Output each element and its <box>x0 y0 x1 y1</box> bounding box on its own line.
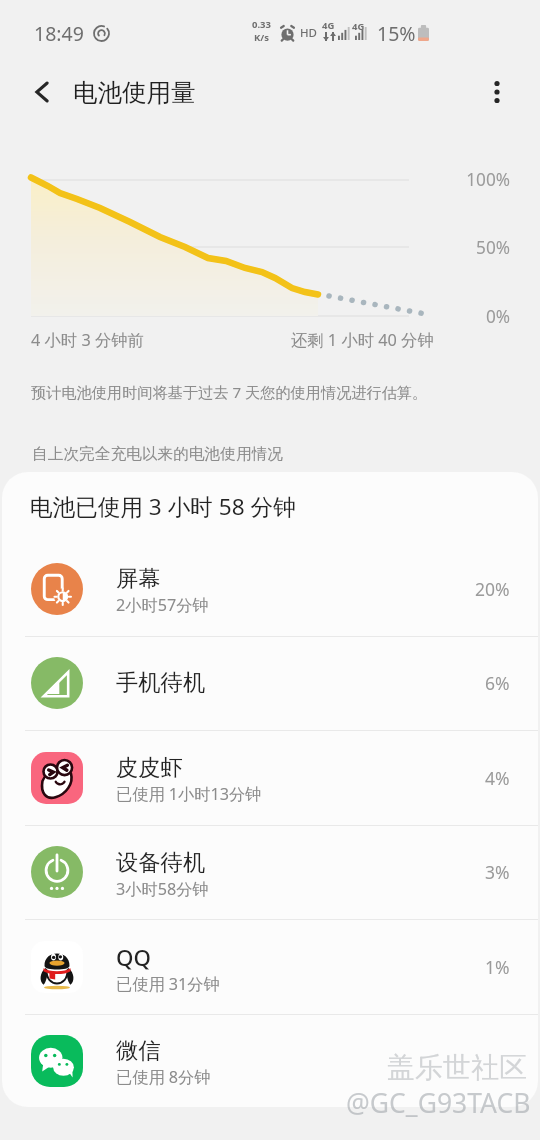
staticText: 屏幕 <box>116 565 161 593</box>
staticText: 已使用 1小时13分钟 <box>116 783 262 805</box>
staticText: 18:49 <box>34 20 84 47</box>
button[interactable]: QQ <box>2 919 538 1014</box>
staticText: 已使用 8分钟 <box>116 1066 211 1088</box>
staticText: 手机待机 <box>116 669 206 697</box>
staticText: 1% <box>485 955 510 979</box>
button[interactable]: 屏幕 <box>2 541 538 636</box>
staticText: 6% <box>485 671 510 695</box>
staticText: 0.33 <box>252 18 271 31</box>
staticText: 15% <box>377 20 416 47</box>
button[interactable]: More options <box>473 68 521 116</box>
staticText: QQ <box>116 942 151 972</box>
staticText: 4% <box>485 766 510 790</box>
staticText: 2小时57分钟 <box>116 594 209 616</box>
staticText: 预计电池使用时间将基于过去 7 天您的使用情况进行估算。 <box>31 382 428 403</box>
staticText: 4 小时 3 分钟前 <box>31 329 144 351</box>
button[interactable]: 手机待机 <box>2 636 538 730</box>
staticText: 50% <box>0 236 510 259</box>
staticText: 自上次完全充电以来的电池使用情况 <box>32 444 283 464</box>
button[interactable]: 微信 <box>2 1014 538 1107</box>
staticText: 电池使用量 <box>73 77 196 108</box>
staticText: 电池已使用 3 小时 58 分钟 <box>30 491 296 522</box>
staticText: 微信 <box>116 1037 161 1065</box>
staticText: K/s <box>254 31 270 44</box>
staticText: 设备待机 <box>116 849 206 877</box>
staticText: 100% <box>0 168 510 191</box>
button[interactable]: Back <box>17 68 65 116</box>
staticText: @GC_G93TACB <box>346 1085 531 1121</box>
staticText: 盖乐世社区 <box>387 1050 527 1085</box>
staticText: 20% <box>475 577 510 601</box>
staticText: 还剩 1 小时 40 分钟 <box>291 329 434 351</box>
staticText: 0% <box>0 305 510 328</box>
staticText: 3小时58分钟 <box>116 878 209 900</box>
staticText: HD <box>300 25 318 41</box>
button[interactable]: 皮皮虾 <box>2 730 538 825</box>
staticText: 4G <box>352 20 365 33</box>
staticText: 已使用 31分钟 <box>116 973 220 995</box>
button[interactable]: 设备待机 <box>2 825 538 919</box>
staticText: 皮皮虾 <box>116 754 183 782</box>
staticText: 3% <box>485 860 510 884</box>
staticText: 4G <box>322 19 335 32</box>
